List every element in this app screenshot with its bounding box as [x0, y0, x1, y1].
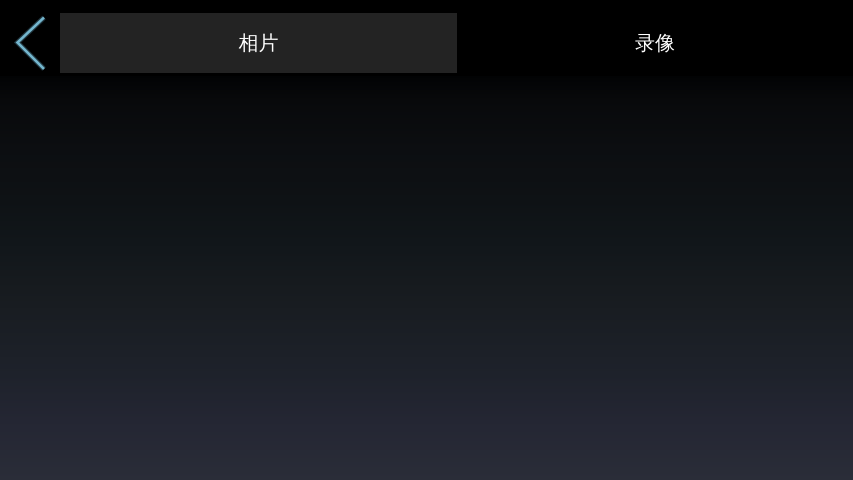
staticText: 录像 [635, 31, 675, 55]
button[interactable]: 相片 [60, 13, 457, 73]
button[interactable]: Back [0, 0, 60, 76]
staticText: 相片 [238, 31, 278, 55]
button[interactable]: 录像 [457, 13, 853, 73]
